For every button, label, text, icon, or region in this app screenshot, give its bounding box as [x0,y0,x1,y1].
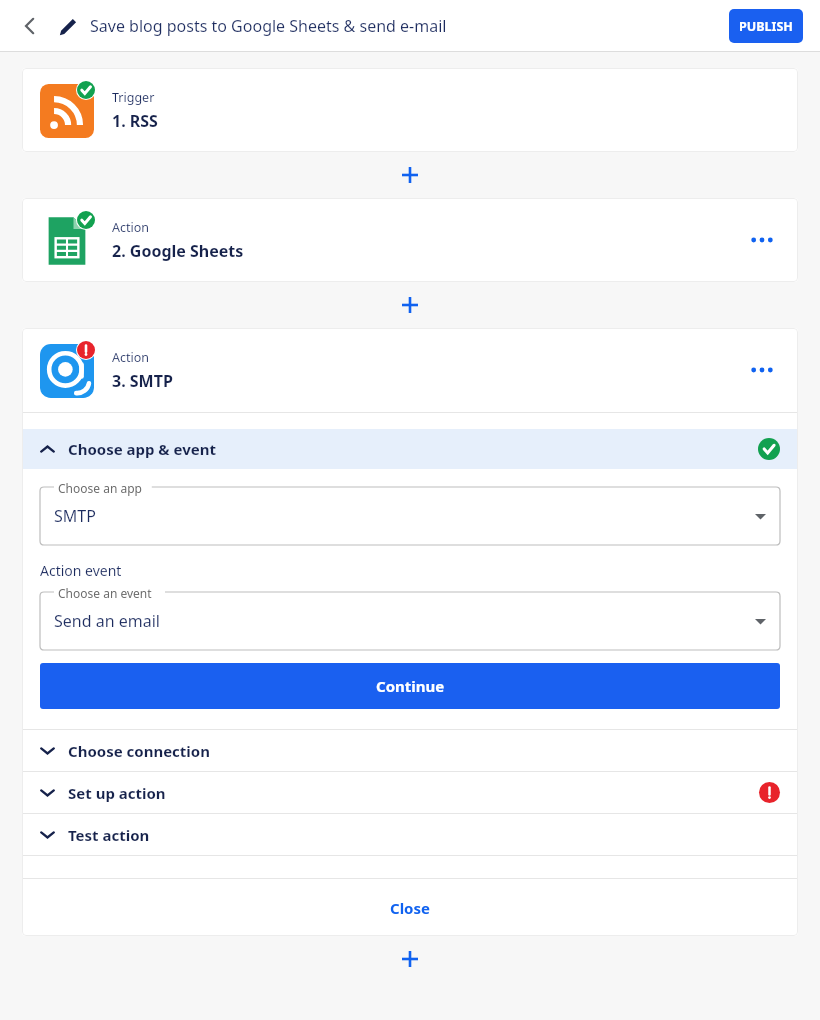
button[interactable]: Action [22,198,798,282]
button[interactable]: Action [22,328,798,412]
staticText: Choose an app [58,480,142,496]
staticText: Send an email [54,610,160,632]
staticText: Action [112,349,150,366]
staticText: 2. Google Sheets [112,240,244,262]
staticText: 3. SMTP [112,370,173,392]
button[interactable]: Trigger [22,68,798,152]
button[interactable]: Continue [40,663,780,709]
button[interactable]: Close [22,879,798,936]
staticText: Choose connection [68,741,210,761]
button[interactable]: Test action [22,814,798,855]
button[interactable]: Add step [0,936,820,982]
staticText: PUBLISH [739,18,793,35]
button[interactable]: More options [742,220,782,260]
button[interactable]: Set up action [22,772,798,813]
button[interactable]: Choose app & event [22,429,798,469]
staticText: 1. RSS [112,110,158,132]
staticText: Continue [376,676,445,696]
staticText: Test action [68,825,150,845]
staticText: SMTP [54,505,96,527]
staticText: Action event [40,561,122,580]
button[interactable]: Edit name [50,9,84,43]
staticText: Set up action [68,783,166,803]
staticText: Choose app & event [68,439,216,459]
button[interactable]: Back [10,6,50,46]
staticText: Choose an event [58,585,152,601]
button[interactable]: Choose connection [22,730,798,771]
button[interactable]: Add step [0,152,820,198]
staticText: Close [390,898,430,918]
button[interactable]: PUBLISH [729,9,803,43]
button[interactable]: More options [742,350,782,390]
staticText: Action [112,219,150,236]
button[interactable]: Add step [0,282,820,328]
staticText: Save blog posts to Google Sheets & send … [90,15,447,37]
staticText: Trigger [112,89,155,106]
